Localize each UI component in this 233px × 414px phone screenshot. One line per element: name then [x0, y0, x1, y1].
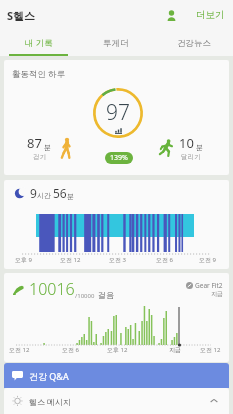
staticText: S헬스 [7, 8, 36, 23]
staticText: 분 [196, 143, 203, 152]
staticText: 분 [44, 143, 51, 152]
staticText: 오전 12 [200, 346, 221, 354]
button[interactable]: 내 기록 [0, 30, 77, 56]
staticText: 헬스 메시지 [29, 396, 72, 407]
staticText: 오전 6 [62, 346, 79, 354]
staticText: 오전 12 [9, 346, 30, 354]
staticText: 56 [53, 185, 67, 201]
staticText: 오전 6 [156, 256, 173, 264]
button[interactable]: 9 [4, 180, 229, 269]
staticText: 시간 [37, 191, 53, 201]
button[interactable]: Profile [158, 2, 184, 28]
button[interactable]: 건강 Q&A [4, 363, 229, 388]
staticText: 지금 [211, 290, 223, 298]
staticText: /10000 [75, 292, 95, 300]
staticText: 투게더 [103, 38, 129, 49]
staticText: 걸음 [98, 290, 114, 300]
staticText: 내 기록 [25, 37, 53, 49]
staticText: 걷기 [33, 153, 46, 161]
button[interactable]: 투게더 [77, 30, 155, 56]
staticText: 87 [27, 134, 42, 152]
staticText: 오후 12 [107, 346, 128, 354]
staticText: 더보기 [196, 9, 225, 21]
staticText: 달리기 [181, 153, 201, 161]
staticText: 10016 [29, 278, 75, 300]
staticText: 지금 [169, 346, 181, 354]
staticText: 오전 3 [109, 256, 126, 264]
other: Collapse [208, 395, 220, 407]
button[interactable]: 활동적인 하루 [4, 60, 229, 175]
staticText: 분 [67, 192, 74, 201]
staticText: 건강뉴스 [177, 38, 211, 49]
staticText: 활동적인 하루 [12, 68, 66, 80]
staticText: 오전 9 [199, 256, 216, 264]
button[interactable]: 더보기 [188, 3, 233, 27]
staticText: 건강 Q&A [29, 370, 69, 382]
staticText: 오전 12 [60, 256, 81, 264]
staticText: 97 [106, 98, 130, 127]
staticText: 10 [179, 134, 194, 152]
button[interactable]: 건강뉴스 [155, 30, 233, 56]
button[interactable]: 헬스 메시지 [4, 388, 229, 414]
staticText: 오후 9 [15, 256, 32, 264]
button[interactable]: 10016 [4, 273, 229, 362]
staticText: Gear Fit2 [195, 281, 223, 290]
staticText: 9 [30, 185, 37, 201]
staticText: 139% [110, 153, 128, 163]
